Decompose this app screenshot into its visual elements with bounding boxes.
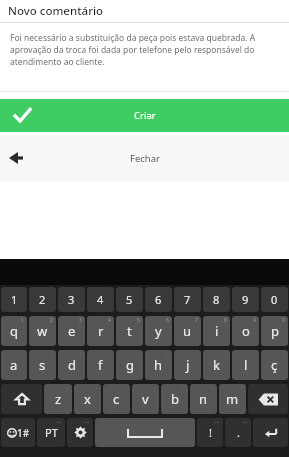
staticText: m bbox=[226, 390, 239, 408]
button[interactable]: x bbox=[74, 384, 101, 414]
staticText: 6 bbox=[166, 317, 169, 324]
staticText: e bbox=[68, 322, 76, 340]
staticText: · bbox=[167, 351, 169, 358]
staticText: c bbox=[113, 390, 120, 408]
button[interactable]: 0 bbox=[261, 287, 288, 312]
button[interactable]: j bbox=[174, 350, 201, 380]
staticText: . bbox=[237, 425, 240, 440]
staticText: · bbox=[154, 385, 156, 392]
button[interactable]: c bbox=[103, 384, 130, 414]
button[interactable]: s bbox=[29, 350, 56, 380]
button[interactable]: 1 bbox=[1, 287, 27, 312]
staticText: y bbox=[155, 322, 162, 340]
button[interactable]: 5 bbox=[116, 287, 143, 312]
staticText: s bbox=[39, 356, 46, 374]
button[interactable]: l bbox=[232, 350, 259, 380]
staticText: r bbox=[98, 322, 104, 340]
staticText: 6 bbox=[155, 292, 162, 307]
button[interactable]: y bbox=[145, 316, 172, 346]
button[interactable]: z bbox=[44, 384, 72, 414]
staticText: g bbox=[126, 356, 134, 374]
button[interactable]: Symbols bbox=[1, 418, 35, 447]
staticText: 2 bbox=[50, 317, 53, 324]
button[interactable]: Backspace bbox=[248, 384, 288, 414]
staticText: 4 bbox=[97, 292, 104, 307]
button[interactable]: . bbox=[225, 418, 251, 447]
button[interactable]: ! bbox=[197, 418, 223, 447]
staticText: Novo comentário bbox=[8, 3, 104, 19]
button[interactable]: d bbox=[58, 350, 85, 380]
button[interactable]: f bbox=[87, 350, 114, 380]
staticText: 9 bbox=[253, 317, 256, 324]
button[interactable]: Shift bbox=[1, 384, 42, 414]
button[interactable]: u bbox=[174, 316, 201, 346]
button[interactable]: m bbox=[219, 384, 246, 414]
staticText: · bbox=[67, 385, 69, 392]
staticText: a bbox=[10, 356, 18, 374]
button[interactable]: v bbox=[132, 384, 159, 414]
staticText: Criar bbox=[134, 109, 156, 122]
button[interactable]: p bbox=[261, 316, 288, 346]
button[interactable]: g bbox=[116, 350, 143, 380]
staticText: w bbox=[37, 322, 48, 340]
staticText: q bbox=[10, 322, 18, 340]
button[interactable]: 8 bbox=[203, 287, 230, 312]
staticText: 1 bbox=[21, 317, 24, 324]
staticText: v bbox=[142, 390, 149, 408]
staticText: · bbox=[51, 351, 53, 358]
staticText: · bbox=[196, 351, 198, 358]
button[interactable]: e bbox=[58, 316, 85, 346]
staticText: l bbox=[244, 356, 248, 374]
staticText: · bbox=[22, 351, 24, 358]
staticText: p bbox=[271, 322, 279, 340]
button[interactable]: b bbox=[161, 384, 188, 414]
button[interactable]: q bbox=[1, 316, 27, 346]
button[interactable]: w bbox=[29, 316, 56, 346]
button[interactable]: 9 bbox=[232, 287, 259, 312]
button[interactable]: 3 bbox=[58, 287, 85, 312]
button[interactable]: PT bbox=[37, 418, 65, 447]
button[interactable]: ç bbox=[261, 350, 288, 380]
staticText: · bbox=[241, 385, 243, 392]
staticText: Fechar bbox=[130, 152, 160, 165]
button[interactable]: i bbox=[203, 316, 230, 346]
staticText: 1 bbox=[11, 292, 18, 307]
staticText: ··· bbox=[215, 419, 220, 426]
button[interactable]: 7 bbox=[174, 287, 201, 312]
staticText: o bbox=[242, 322, 250, 340]
button[interactable]: 4 bbox=[87, 287, 114, 312]
button[interactable]: h bbox=[145, 350, 172, 380]
button[interactable]: 2 bbox=[29, 287, 56, 312]
staticText: f bbox=[98, 356, 103, 374]
button[interactable]: n bbox=[190, 384, 217, 414]
staticText: · bbox=[212, 385, 214, 392]
staticText: 8 bbox=[224, 317, 227, 324]
staticText: ··· bbox=[243, 419, 248, 426]
button[interactable]: k bbox=[203, 350, 230, 380]
staticText: 7 bbox=[195, 317, 198, 324]
button[interactable]: Settings bbox=[67, 418, 93, 447]
staticText: ··· bbox=[85, 419, 90, 426]
staticText: 2 bbox=[39, 292, 46, 307]
button[interactable]: t bbox=[116, 316, 143, 346]
staticText: ç bbox=[271, 356, 278, 374]
button[interactable]: Enter bbox=[253, 418, 288, 447]
staticText: PT bbox=[45, 425, 58, 440]
button[interactable]: Space bbox=[95, 418, 195, 447]
button[interactable]: 6 bbox=[145, 287, 172, 312]
staticText: h bbox=[154, 356, 163, 374]
staticText: x bbox=[84, 390, 91, 408]
button[interactable]: o bbox=[232, 316, 259, 346]
staticText: z bbox=[55, 390, 62, 408]
button[interactable]: Criar bbox=[0, 99, 289, 132]
staticText: 9 bbox=[242, 292, 249, 307]
staticText: 4 bbox=[108, 317, 111, 324]
staticText: · bbox=[109, 351, 111, 358]
button[interactable]: a bbox=[1, 350, 27, 380]
staticText: i bbox=[215, 322, 219, 340]
staticText: 7 bbox=[184, 292, 191, 307]
button[interactable]: Fechar bbox=[0, 135, 289, 181]
staticText: ! bbox=[209, 425, 212, 440]
button[interactable]: r bbox=[87, 316, 114, 346]
staticText: · bbox=[80, 351, 82, 358]
